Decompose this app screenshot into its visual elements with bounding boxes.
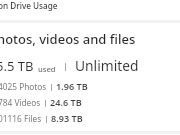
button[interactable]: on Drive Usage <box>0 0 58 11</box>
button[interactable]: 784 Videos <box>0 96 82 108</box>
staticText: on Drive Usage <box>0 0 58 11</box>
button[interactable]: 5.5 TB <box>0 56 139 75</box>
staticText: 1.96 TB <box>56 80 88 92</box>
staticText: hotos, videos and files <box>0 30 136 48</box>
button[interactable]: 4025 Photos <box>0 80 88 92</box>
button[interactable]: 01116 Files <box>0 112 83 124</box>
staticText: used <box>38 64 56 74</box>
staticText: 8.93 TB <box>51 112 83 124</box>
staticText: 5.5 TB <box>0 57 34 75</box>
staticText: 784 Videos <box>0 97 41 108</box>
staticText: 24.6 TB <box>50 96 82 108</box>
staticText: Unlimited <box>75 56 139 75</box>
staticText: 01116 Files <box>0 113 42 124</box>
staticText: 4025 Photos <box>0 81 47 92</box>
